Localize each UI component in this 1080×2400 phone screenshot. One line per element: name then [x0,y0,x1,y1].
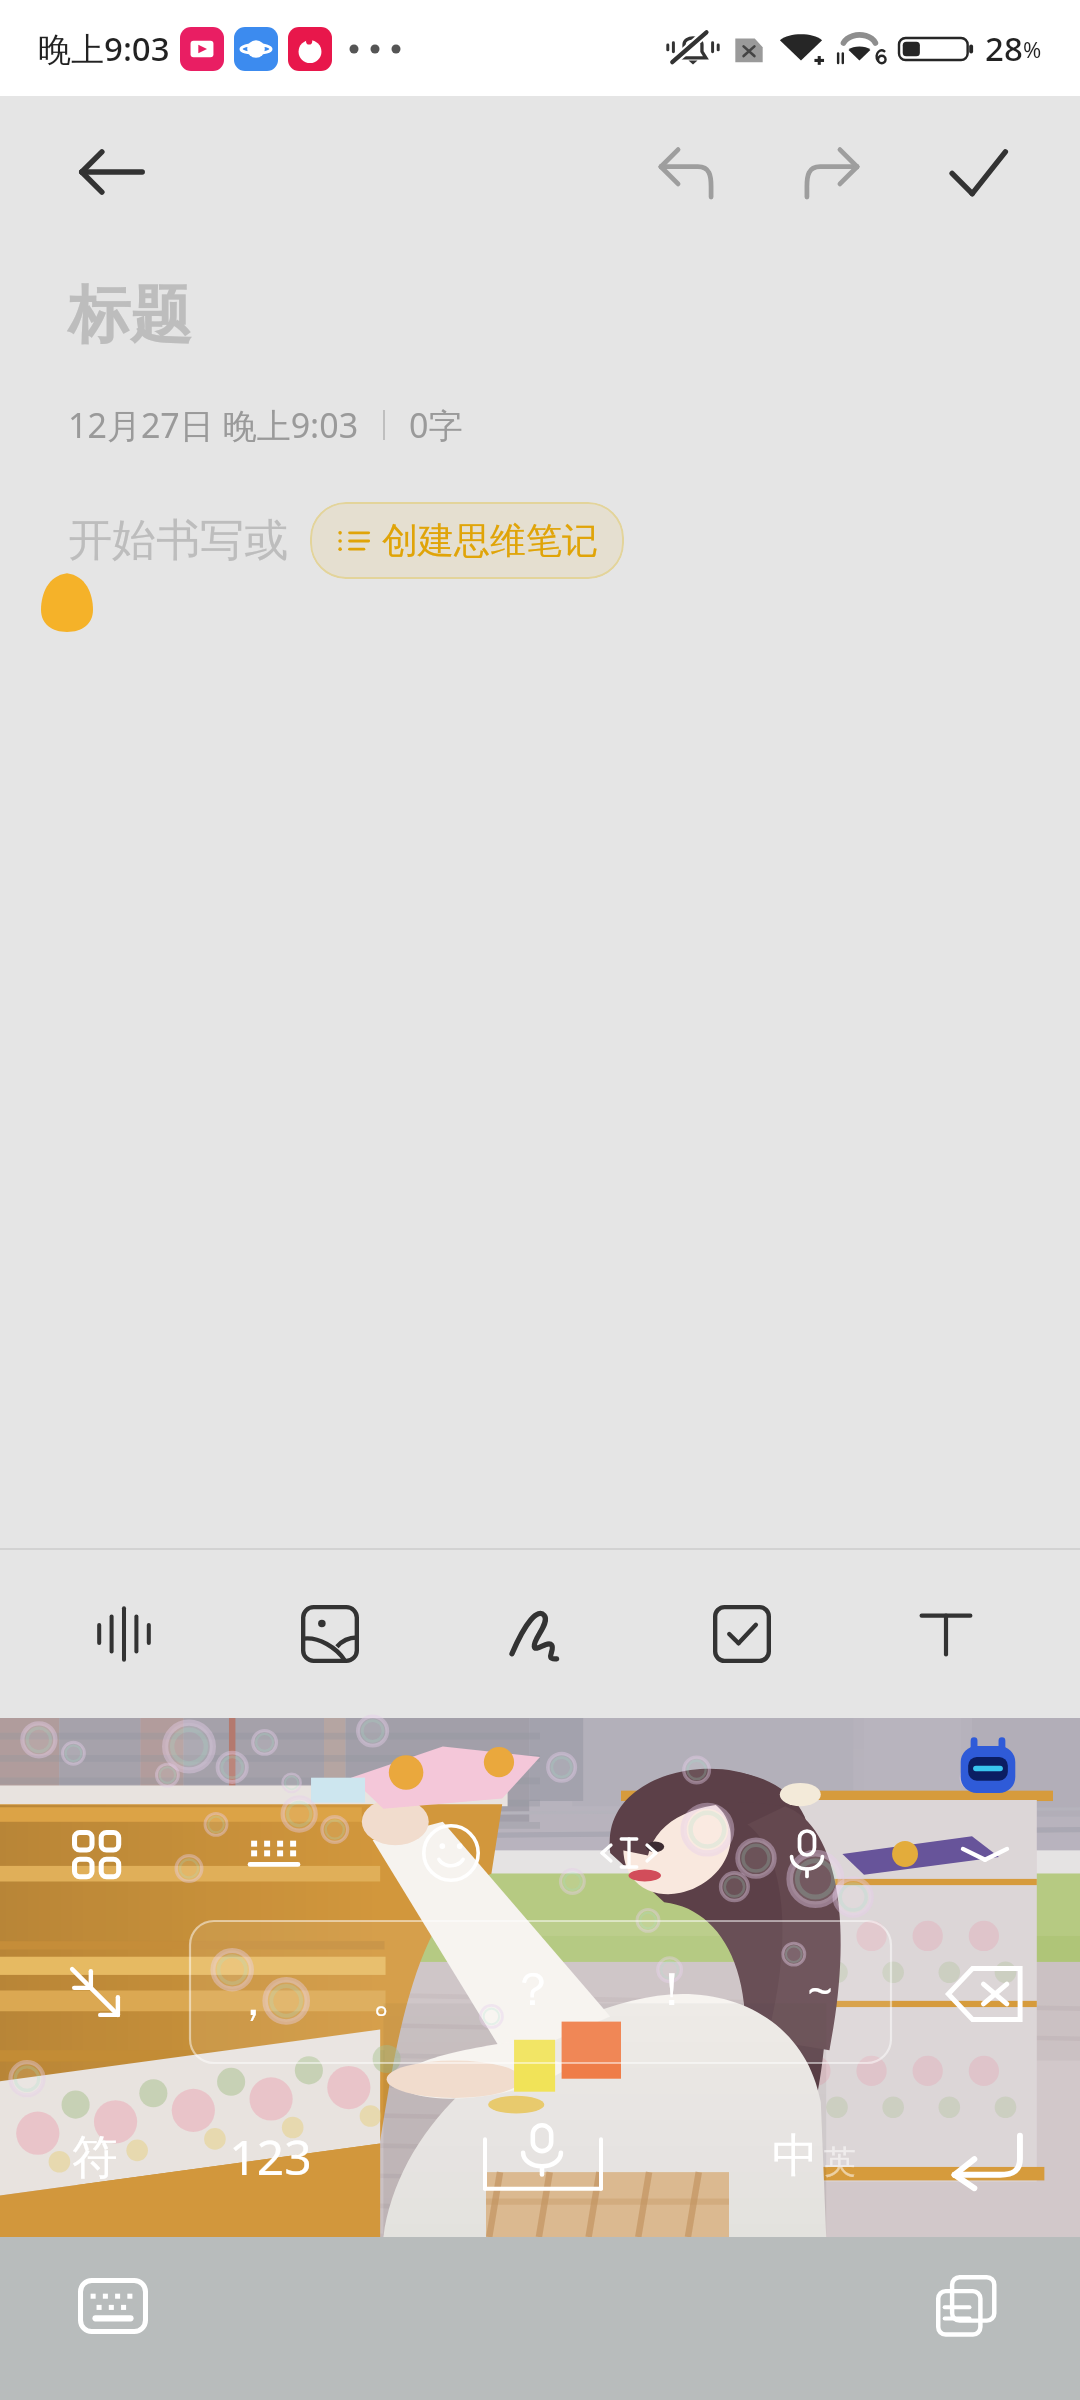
button[interactable]: Handwriting [468,1550,608,1718]
button[interactable]: Todo [672,1550,812,1718]
button[interactable]: Keyboard layout [219,1798,329,1908]
button[interactable]: ， [198,1954,308,2046]
button[interactable]: Move cursor [574,1798,684,1908]
button[interactable]: Done [926,120,1030,224]
staticText: 0字 [409,402,463,448]
button[interactable]: Audio [54,1550,194,1718]
staticText: 12月27日 晚上9:03 [68,402,359,448]
staticText: 123 [229,2124,312,2189]
button[interactable]: 。 [339,1950,449,2042]
button[interactable]: Emoji [396,1798,506,1908]
staticText: % [1023,34,1042,64]
staticText: ， [231,1973,275,2028]
button[interactable]: Text format [876,1550,1016,1718]
button[interactable]: Space [485,2118,601,2198]
button[interactable]: 123 [215,2110,325,2202]
staticText: ？ [510,1961,556,2019]
button[interactable]: Undo [634,120,738,224]
button[interactable]: Enter [930,2103,1040,2213]
staticText: 开始书写或 [68,513,288,568]
button[interactable]: 英 [785,2116,895,2208]
button[interactable]: Delete [930,1939,1040,2049]
staticText: 。 [372,1969,416,2024]
button[interactable]: Hide keyboard [930,1798,1040,1908]
staticText: 创建思维笔记 [382,518,598,563]
staticText: 标题 [68,276,192,354]
button[interactable]: Apps [40,1798,150,1908]
staticText: 28 [985,26,1023,71]
button[interactable]: 符 [40,2112,150,2204]
button[interactable]: Image [260,1550,400,1718]
staticText: ！ [649,1961,695,2019]
button[interactable]: ~ [765,1944,875,2036]
button[interactable]: 创建思维笔记 [310,502,624,579]
button[interactable]: 中 [740,2110,850,2202]
button[interactable]: Clipboard [912,2251,1022,2361]
staticText: ~ [807,1960,833,2020]
button[interactable]: Shrink keyboard [40,1937,150,2047]
staticText: 晚上9:03 [38,26,170,71]
button[interactable]: ？ [478,1944,588,2036]
staticText: 符 [72,2129,118,2187]
button[interactable]: Voice input [752,1798,862,1908]
button[interactable]: Back [57,117,167,227]
staticText: 中 [772,2127,818,2185]
button[interactable]: Redo [780,120,884,224]
staticText: 英 [824,2142,856,2182]
button[interactable]: Keyboard [58,2251,168,2361]
button[interactable]: ！ [617,1944,727,2036]
button[interactable]: Assistant [957,1736,1019,1798]
